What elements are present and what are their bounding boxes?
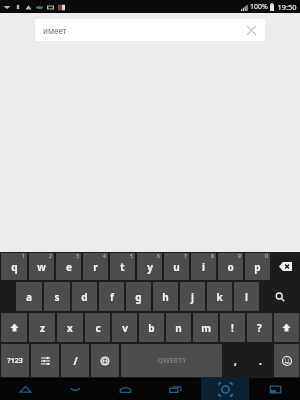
- button[interactable]: Emoji: [274, 344, 299, 377]
- staticText: a: [26, 290, 32, 304]
- staticText: m: [201, 321, 211, 335]
- button[interactable]: .: [249, 344, 272, 377]
- button[interactable]: Keyboard settings: [31, 344, 59, 377]
- staticText: ?: [257, 321, 262, 335]
- staticText: 8: [211, 253, 214, 260]
- staticText: !: [231, 321, 234, 335]
- staticText: t: [120, 260, 125, 274]
- staticText: 6: [157, 253, 160, 260]
- staticText: 4: [103, 253, 106, 260]
- staticText: g: [135, 290, 142, 304]
- button[interactable]: Home: [100, 378, 150, 400]
- staticText: i: [202, 260, 205, 274]
- staticText: s: [54, 290, 60, 304]
- button[interactable]: Split screen: [250, 378, 300, 400]
- staticText: u: [173, 260, 180, 274]
- staticText: 19:50: [277, 2, 297, 12]
- button[interactable]: QWERTY: [121, 344, 222, 377]
- button[interactable]: q: [1, 253, 27, 280]
- staticText: o: [227, 260, 234, 274]
- button[interactable]: Screenshot: [200, 378, 250, 400]
- staticText: 100%: [250, 2, 268, 12]
- button[interactable]: имеет: [35, 19, 265, 41]
- button[interactable]: Search: [261, 282, 299, 311]
- button[interactable]: Shift: [1, 313, 27, 342]
- staticText: c: [95, 321, 101, 335]
- button[interactable]: y: [137, 253, 162, 280]
- button[interactable]: g: [126, 282, 151, 311]
- button[interactable]: p: [245, 253, 270, 280]
- staticText: /: [73, 354, 78, 368]
- staticText: q: [11, 260, 18, 274]
- staticText: 0: [265, 253, 268, 260]
- button[interactable]: h: [153, 282, 178, 311]
- button[interactable]: Shift: [274, 313, 299, 342]
- button[interactable]: j: [180, 282, 205, 311]
- button[interactable]: l: [234, 282, 259, 311]
- staticText: y: [147, 260, 153, 274]
- button[interactable]: z: [29, 313, 55, 342]
- staticText: w: [37, 260, 46, 274]
- button[interactable]: Back: [0, 378, 50, 400]
- staticText: 3: [76, 253, 79, 260]
- button[interactable]: r: [83, 253, 108, 280]
- staticText: 2: [49, 253, 52, 260]
- button[interactable]: t: [110, 253, 135, 280]
- button[interactable]: o: [218, 253, 243, 280]
- button[interactable]: a: [16, 282, 42, 311]
- button[interactable]: w: [29, 253, 54, 280]
- staticText: b: [148, 321, 155, 335]
- button[interactable]: !: [220, 313, 245, 342]
- staticText: n: [175, 321, 182, 335]
- staticText: ?123: [7, 356, 23, 366]
- button[interactable]: Clear query: [244, 23, 258, 37]
- staticText: QWERTY: [157, 356, 187, 366]
- staticText: l: [245, 290, 248, 304]
- button[interactable]: ?123: [1, 344, 29, 377]
- button[interactable]: x: [57, 313, 83, 342]
- button[interactable]: Backspace: [272, 253, 299, 280]
- staticText: ,: [234, 354, 237, 368]
- button[interactable]: b: [139, 313, 164, 342]
- staticText: r: [93, 260, 98, 274]
- button[interactable]: n: [166, 313, 191, 342]
- staticText: f: [110, 290, 114, 304]
- button[interactable]: Hide keyboard: [50, 378, 100, 400]
- button[interactable]: u: [164, 253, 189, 280]
- button[interactable]: ?: [247, 313, 272, 342]
- staticText: v: [122, 321, 128, 335]
- staticText: имеет: [43, 25, 67, 36]
- button[interactable]: ,: [224, 344, 247, 377]
- button[interactable]: d: [72, 282, 97, 311]
- staticText: 7: [184, 253, 187, 260]
- staticText: 1: [22, 253, 25, 260]
- staticText: d: [81, 290, 88, 304]
- button[interactable]: e: [56, 253, 81, 280]
- button[interactable]: s: [44, 282, 70, 311]
- staticText: j: [191, 290, 194, 304]
- staticText: p: [254, 260, 261, 274]
- staticText: .: [259, 354, 262, 368]
- staticText: e: [66, 260, 72, 274]
- button[interactable]: k: [207, 282, 232, 311]
- button[interactable]: i: [191, 253, 216, 280]
- staticText: 9: [238, 253, 241, 260]
- staticText: z: [40, 321, 45, 335]
- staticText: 5: [130, 253, 133, 260]
- button[interactable]: v: [112, 313, 137, 342]
- button[interactable]: Change language: [91, 344, 119, 377]
- button[interactable]: c: [85, 313, 110, 342]
- staticText: h: [162, 290, 169, 304]
- button[interactable]: m: [193, 313, 218, 342]
- button[interactable]: Recent apps: [150, 378, 200, 400]
- staticText: k: [216, 290, 223, 304]
- button[interactable]: /: [61, 344, 89, 377]
- button[interactable]: f: [99, 282, 124, 311]
- staticText: x: [67, 321, 73, 335]
